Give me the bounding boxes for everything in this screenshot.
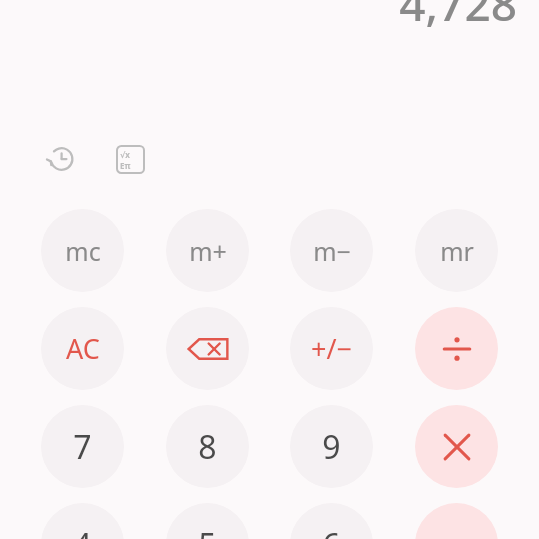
staticText: 6 — [322, 523, 341, 539]
staticText: m+ — [189, 234, 227, 268]
staticText: +/− — [311, 330, 352, 367]
staticText: mr — [440, 234, 474, 268]
button[interactable]: m plus — [166, 209, 249, 292]
button[interactable]: m minus — [290, 209, 373, 292]
staticText: 4 — [73, 523, 92, 539]
staticText: 7 — [73, 425, 92, 469]
button[interactable]: All clear — [41, 307, 124, 390]
button[interactable]: 5 — [166, 503, 249, 539]
button[interactable]: 9 — [290, 405, 373, 488]
button[interactable]: 6 — [290, 503, 373, 539]
button[interactable]: Scientific functions — [111, 140, 149, 178]
button[interactable]: Divide — [415, 307, 498, 390]
staticText: Eπ — [120, 160, 131, 171]
button[interactable]: 8 — [166, 405, 249, 488]
button[interactable]: mr — [415, 209, 498, 292]
button[interactable]: Backspace — [166, 307, 249, 390]
button[interactable]: mc — [41, 209, 124, 292]
staticText: 8 — [198, 425, 217, 469]
staticText: 5 — [198, 523, 217, 539]
button[interactable]: Multiply — [415, 405, 498, 488]
staticText: m− — [313, 234, 351, 268]
staticText: mc — [65, 234, 101, 268]
staticText: 4,728 — [399, 0, 517, 35]
staticText: AC — [66, 330, 100, 367]
button[interactable]: Subtract — [415, 503, 498, 539]
button[interactable]: Plus minus sign — [290, 307, 373, 390]
button[interactable]: 7 — [41, 405, 124, 488]
staticText: 9 — [322, 425, 341, 469]
staticText: √x — [120, 149, 130, 160]
button[interactable]: History — [42, 140, 80, 178]
button[interactable]: 4 — [41, 503, 124, 539]
